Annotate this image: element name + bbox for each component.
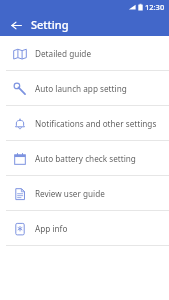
staticText: Auto launch app setting [35,83,127,94]
staticText: Auto battery check setting [35,153,136,164]
button[interactable]: Review user guide [0,176,169,210]
button[interactable]: App info [0,211,169,245]
staticText: Review user guide [35,188,105,199]
staticText: Notifications and other settings [35,118,157,129]
staticText: App info [35,223,68,234]
button[interactable]: Back [7,16,25,34]
staticText: Detailed guide [35,48,92,59]
button[interactable]: Notifications and other settings [0,106,169,140]
staticText: Setting [31,17,69,32]
button[interactable]: Auto launch app setting [0,71,169,105]
button[interactable]: Detailed guide [0,36,169,70]
staticText: 12:30 [145,2,165,12]
button[interactable]: Auto battery check setting [0,141,169,175]
